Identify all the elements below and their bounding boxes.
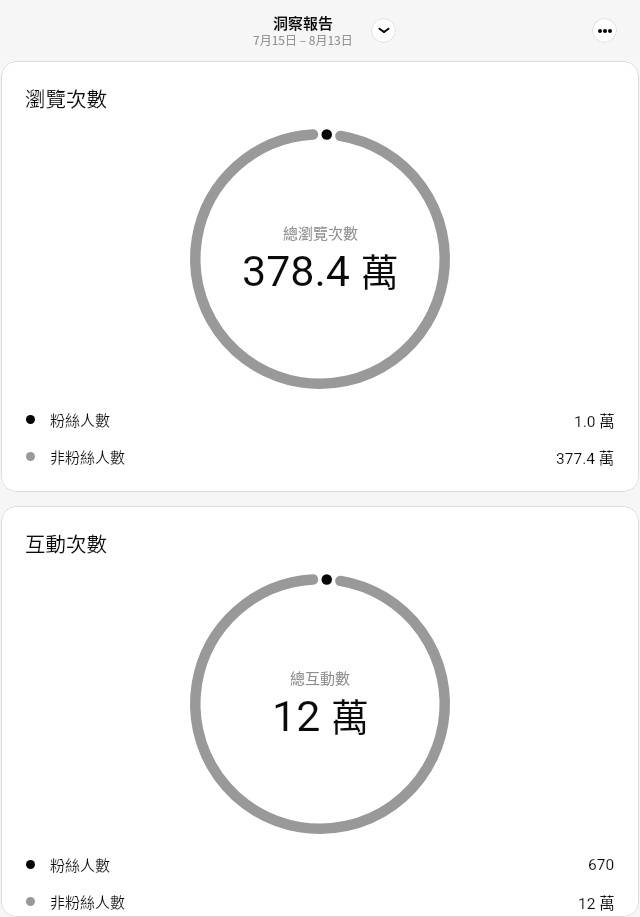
- staticText: 1.0 萬: [574, 409, 615, 431]
- staticText: 非粉絲人數: [50, 446, 126, 468]
- staticText: 互動次數: [25, 528, 107, 558]
- staticText: 瀏覽次數: [25, 83, 107, 113]
- staticText: 總瀏覽次數: [283, 222, 359, 244]
- button[interactable]: Change date range: [371, 18, 396, 43]
- staticText: 粉絲人數: [50, 854, 111, 876]
- staticText: 12 萬: [272, 687, 369, 742]
- staticText: 12 萬: [578, 891, 615, 913]
- button[interactable]: More options: [592, 18, 617, 43]
- button[interactable]: 粉絲人數: [1, 846, 639, 883]
- staticText: 378.4 萬: [242, 242, 399, 297]
- staticText: 670: [588, 856, 615, 874]
- staticText: 非粉絲人數: [50, 891, 126, 913]
- button[interactable]: 非粉絲人數: [1, 883, 639, 917]
- staticText: 7月15日 – 8月13日: [253, 31, 353, 48]
- staticText: 377.4 萬: [556, 446, 615, 468]
- button[interactable]: 粉絲人數: [1, 401, 639, 438]
- staticText: 洞察報告: [273, 12, 334, 34]
- staticText: 粉絲人數: [50, 409, 111, 431]
- button[interactable]: 非粉絲人數: [1, 438, 639, 475]
- staticText: 總互動數: [290, 667, 351, 689]
